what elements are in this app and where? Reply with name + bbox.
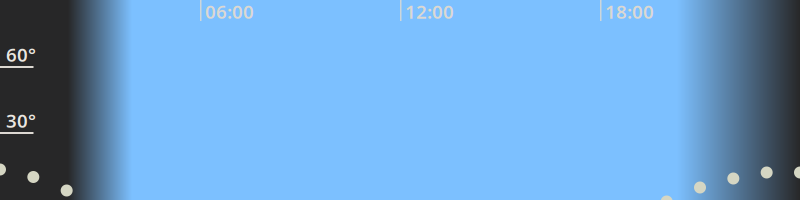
staticText: 60°	[6, 42, 36, 67]
staticText: 30°	[6, 108, 36, 133]
staticText: 12:00	[405, 0, 454, 24]
staticText: 06:00	[205, 0, 254, 24]
staticText: 18:00	[605, 0, 654, 24]
